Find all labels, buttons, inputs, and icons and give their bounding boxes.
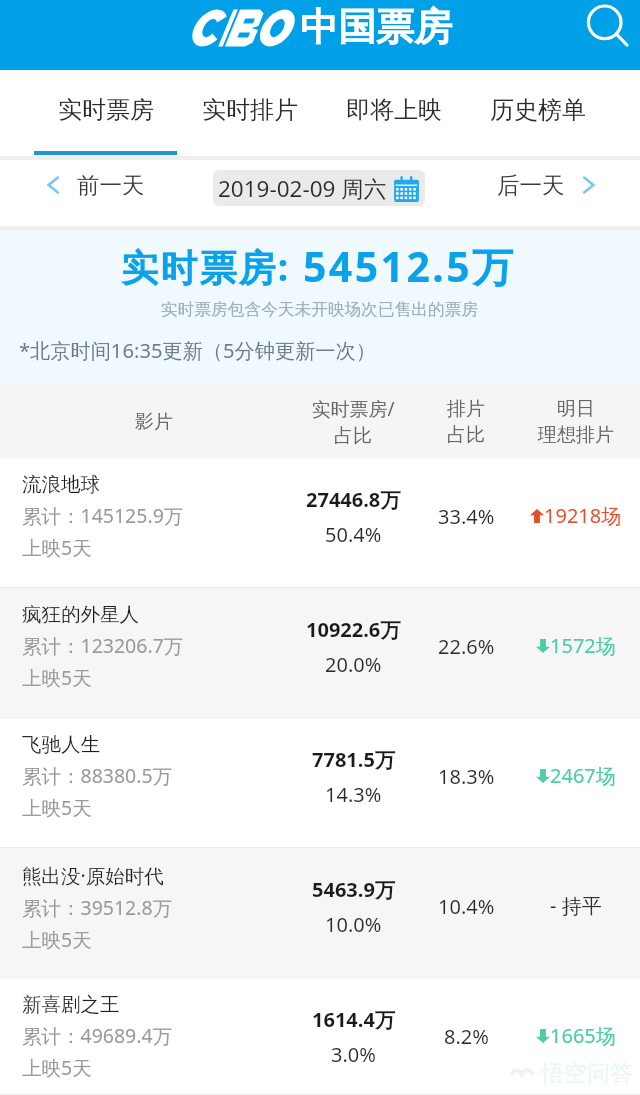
staticText: 19218场 (544, 502, 622, 529)
staticText: 排片 占比 (447, 397, 485, 446)
staticText: 2019-02-09 周六 (218, 173, 387, 204)
staticText: 上映5天 (22, 534, 92, 561)
button[interactable]: 新喜剧之王 (0, 978, 640, 1095)
staticText: 10.0% (325, 911, 382, 938)
staticText: 上映5天 (22, 664, 92, 691)
staticText: 上映5天 (22, 1054, 92, 1081)
staticText: 33.4% (438, 503, 495, 530)
staticText: *北京时间16:35更新（5分钟更新一次） (19, 336, 376, 364)
staticText: 悟空问答 (541, 1059, 633, 1088)
staticText: 54512.5万 (303, 238, 516, 294)
button[interactable]: 流浪地球 (0, 458, 640, 588)
staticText: 1572场 (550, 632, 616, 659)
staticText: 10922.6万 (306, 616, 401, 643)
staticText: 18.3% (438, 763, 495, 790)
staticText: 50.4% (325, 521, 382, 548)
staticText: 累计：88380.5万 (22, 762, 173, 789)
button[interactable]: 前一天 (42, 171, 145, 199)
staticText: 14.3% (325, 781, 382, 808)
button[interactable]: Search (575, 0, 635, 56)
staticText: 累计：39512.8万 (22, 894, 173, 921)
staticText: 实时票房: (121, 241, 303, 292)
staticText: 1614.4万 (312, 1006, 395, 1033)
staticText: 后一天 (497, 171, 565, 199)
staticText: 上映5天 (22, 794, 92, 821)
staticText: 熊出没·原始时代 (22, 862, 164, 889)
staticText: - 持平 (550, 892, 602, 919)
staticText: 累计：145125.9万 (22, 502, 184, 529)
staticText: 中国票房 (300, 3, 452, 51)
button[interactable]: 历史榜单 (466, 70, 610, 160)
staticText: 上映5天 (22, 926, 92, 953)
staticText: 实时排片 (202, 95, 298, 125)
staticText: 22.6% (438, 633, 495, 660)
staticText: 3.0% (331, 1041, 376, 1068)
staticText: 27446.8万 (306, 486, 401, 513)
staticText: 1665场 (550, 1022, 616, 1049)
button[interactable]: 即将上映 (322, 70, 466, 160)
staticText: 20.0% (325, 651, 382, 678)
button[interactable]: 飞驰人生 (0, 718, 640, 848)
button[interactable]: 实时票房 (34, 70, 178, 160)
staticText: 影片 (135, 410, 173, 434)
button[interactable]: 实时排片 (178, 70, 322, 160)
staticText: 累计：123206.7万 (22, 632, 184, 659)
staticText: 8.2% (444, 1023, 489, 1050)
staticText: 即将上映 (346, 95, 442, 125)
staticText: 前一天 (77, 171, 145, 199)
button[interactable]: 2019-02-09 周六 (213, 170, 425, 206)
staticText: 实时票房 (58, 95, 154, 125)
button[interactable]: 后一天 (497, 171, 600, 199)
staticText: 明日 理想排片 (538, 397, 614, 446)
staticText: 实时票房包含今天未开映场次已售出的票房 (161, 299, 479, 320)
staticText: 10.4% (438, 893, 495, 920)
button[interactable]: 熊出没·原始时代 (0, 848, 640, 978)
staticText: 飞驰人生 (22, 732, 100, 757)
staticText: 新喜剧之王 (22, 992, 120, 1017)
staticText: 5463.9万 (312, 876, 395, 903)
staticText: 疯狂的外星人 (22, 602, 139, 627)
button[interactable]: 疯狂的外星人 (0, 588, 640, 718)
staticText: 流浪地球 (22, 472, 100, 497)
staticText: 历史榜单 (490, 95, 586, 125)
staticText: 实时票房/ 占比 (311, 396, 395, 447)
staticText: 2467场 (550, 762, 616, 789)
staticText: 累计：49689.4万 (22, 1022, 173, 1049)
staticText: 7781.5万 (312, 746, 395, 773)
